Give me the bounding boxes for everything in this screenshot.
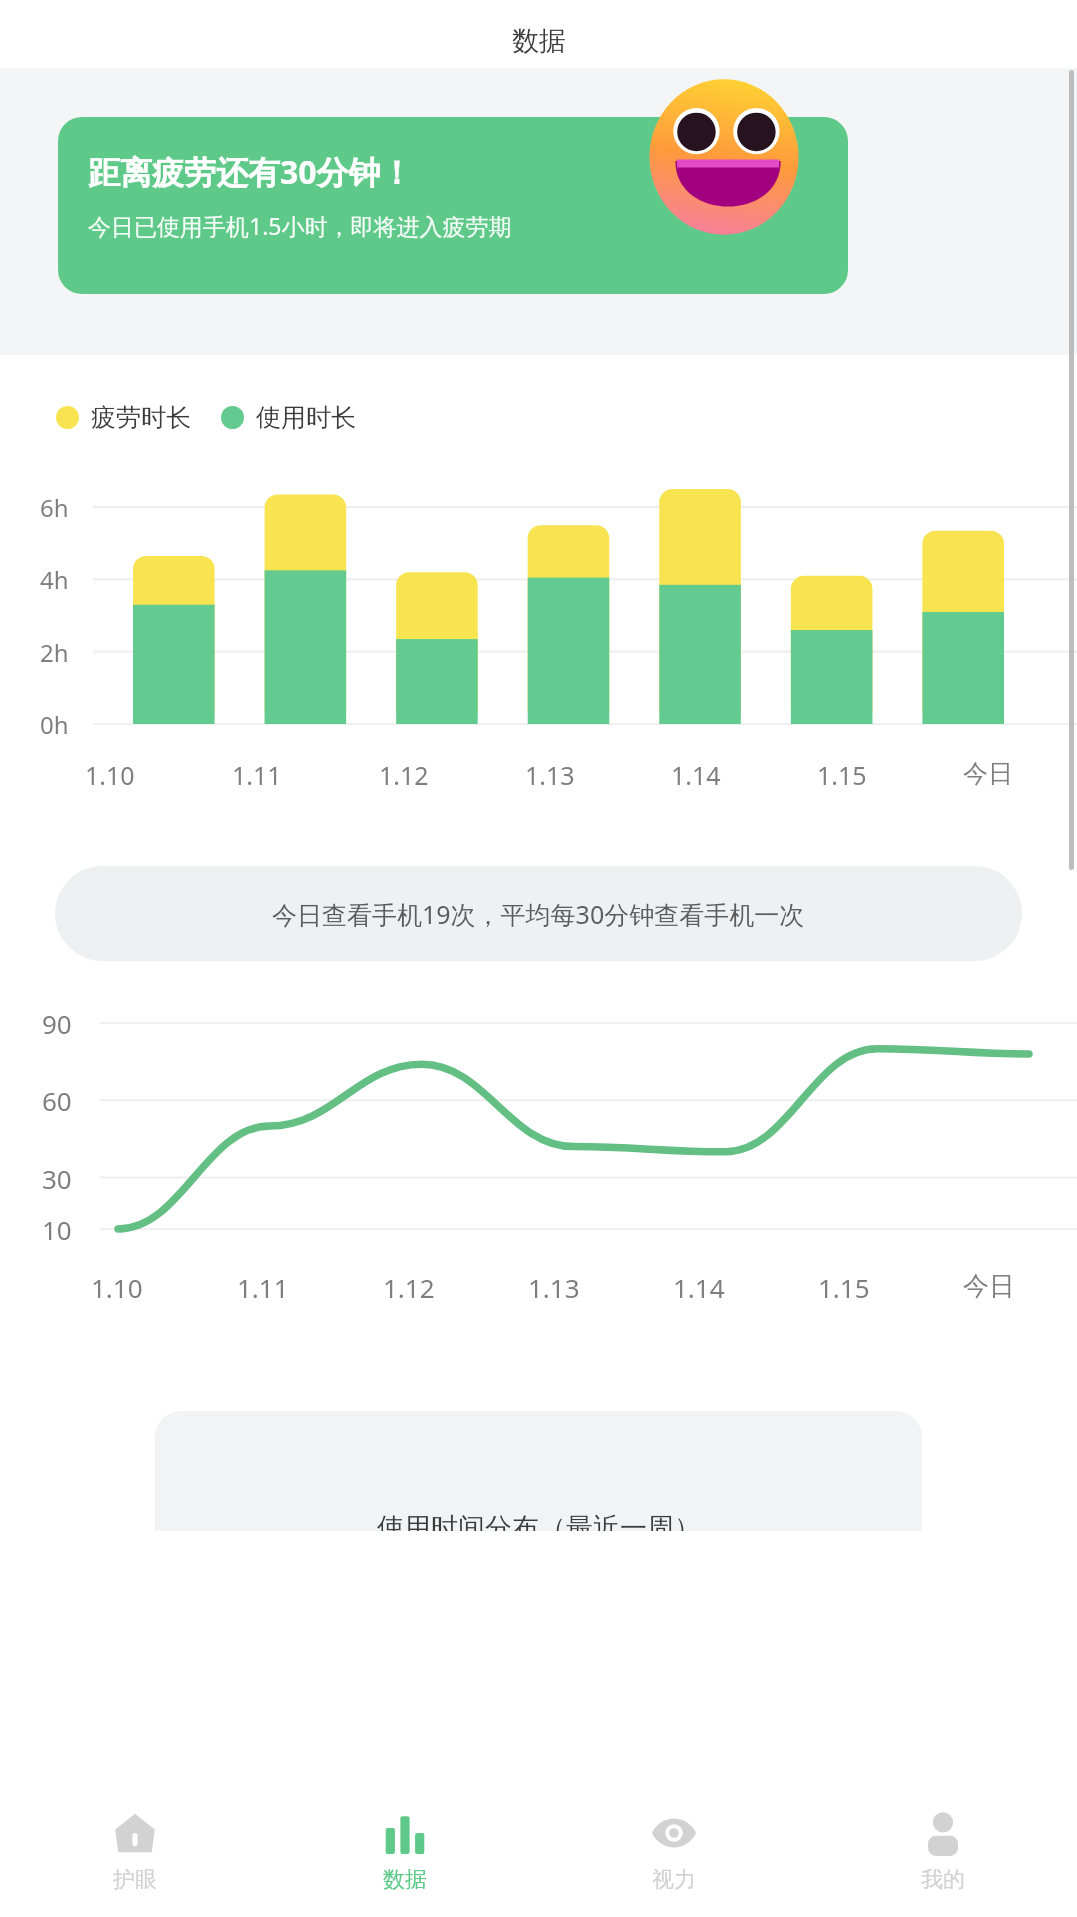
button[interactable]: 距离疲劳还有30分钟！ [58, 117, 848, 294]
staticText: 1.15 [817, 758, 867, 792]
staticText: 我的 [921, 1866, 965, 1894]
button[interactable]: 疲劳时长 [56, 402, 191, 433]
staticText: 2h [40, 636, 69, 669]
staticText: 1.13 [528, 1270, 580, 1305]
button[interactable]: 使用时间分布（最近一周） [155, 1411, 922, 1531]
staticText: 60 [42, 1083, 72, 1118]
other: 我的 [921, 1811, 965, 1855]
staticText: 今日 [963, 1270, 1015, 1303]
button[interactable]: 今日查看手机19次，平均每30分钟查看手机一次 [55, 866, 1022, 961]
staticText: 护眼 [113, 1866, 157, 1894]
staticText: 6h [40, 491, 69, 524]
staticText: 今日 [963, 758, 1013, 789]
staticText: 1.12 [383, 1270, 435, 1305]
staticText: 疲劳时长 [91, 402, 191, 433]
staticText: 距离疲劳还有30分钟！ [88, 150, 413, 194]
staticText: 今日已使用手机1.5小时，即将进入疲劳期 [88, 210, 512, 241]
staticText: 今日查看手机19次，平均每30分钟查看手机一次 [272, 897, 805, 931]
button[interactable]: 我的 [808, 1787, 1077, 1917]
button[interactable]: 数据 [270, 1787, 539, 1917]
staticText: 1.13 [525, 758, 575, 792]
other: 视力 [651, 1810, 697, 1856]
staticText: 0h [40, 708, 69, 741]
button[interactable]: 视力 [539, 1787, 808, 1917]
staticText: 使用时长 [256, 402, 356, 433]
staticText: 视力 [652, 1866, 696, 1894]
staticText: 90 [42, 1006, 72, 1041]
staticText: 1.10 [91, 1270, 143, 1305]
staticText: 数据 [512, 24, 566, 58]
button[interactable]: 护眼 [0, 1787, 270, 1917]
staticText: 1.12 [379, 758, 429, 792]
staticText: 1.15 [818, 1270, 870, 1305]
staticText: 1.10 [85, 758, 135, 792]
staticText: 1.14 [671, 758, 721, 792]
staticText: 1.14 [673, 1270, 725, 1305]
staticText: 10 [42, 1212, 72, 1247]
staticText: 使用时间分布（最近一周） [377, 1511, 701, 1531]
staticText: 1.11 [237, 1270, 289, 1305]
other: 数据 [384, 1812, 426, 1854]
staticText: 1.11 [232, 758, 282, 792]
button[interactable]: 使用时长 [221, 402, 356, 433]
staticText: 数据 [383, 1866, 427, 1894]
staticText: 4h [40, 563, 69, 596]
other: 护眼 [113, 1811, 157, 1855]
staticText: 30 [42, 1161, 72, 1196]
